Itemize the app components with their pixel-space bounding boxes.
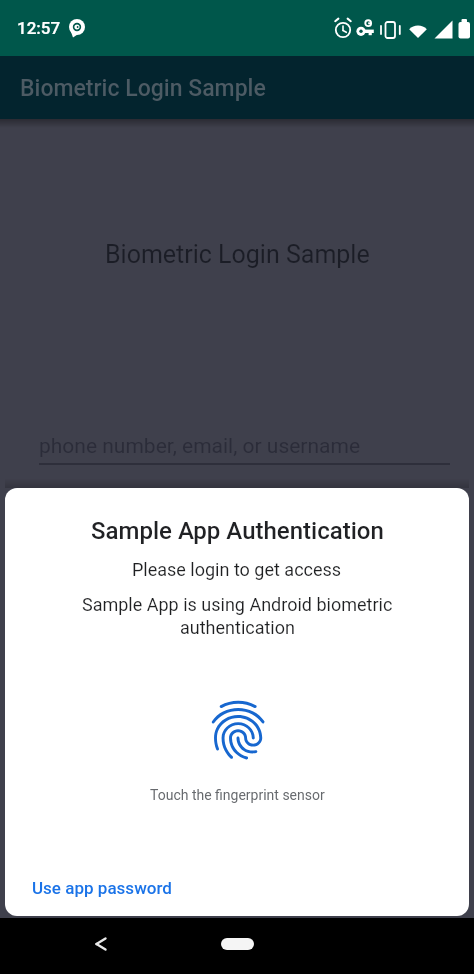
- staticText: phone number, email, or username: [39, 434, 361, 459]
- staticText: Please login to get access: [132, 559, 342, 580]
- staticText: 12:57: [17, 18, 61, 38]
- staticText: authentication: [180, 617, 295, 638]
- button[interactable]: [80, 924, 124, 968]
- staticText: Sample App is using Android biometric: [82, 594, 393, 615]
- button[interactable]: Use app password: [22, 868, 182, 908]
- staticText: Sample App Authentication: [91, 517, 384, 545]
- staticText: Biometric Login Sample: [20, 75, 266, 102]
- staticText: Touch the fingerprint sensor: [150, 787, 325, 803]
- button[interactable]: phone number, email, or username: [34, 429, 454, 469]
- staticText: Biometric Login Sample: [105, 240, 370, 269]
- staticText: Use app password: [32, 878, 172, 898]
